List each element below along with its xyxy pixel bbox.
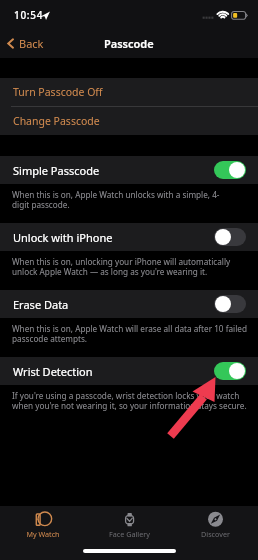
staticText: Unlock with iPhone: [13, 230, 214, 245]
button[interactable]: Unlock with iPhone: [0, 223, 258, 251]
button[interactable]: Simple Passcode: [0, 156, 258, 184]
button[interactable]: Change Passcode: [0, 107, 258, 135]
staticText: Change Passcode: [13, 114, 100, 128]
staticText: 10:54: [14, 8, 44, 22]
button[interactable]: Back: [0, 31, 52, 56]
staticText: Discover: [201, 529, 230, 539]
staticText: Simple Passcode: [13, 163, 214, 178]
button[interactable]: Turn Passcode Off: [0, 78, 258, 106]
button[interactable]: Wrist Detection: [0, 357, 258, 385]
staticText: When this is on, Apple Watch will erase …: [12, 323, 247, 345]
staticText: Back: [19, 36, 44, 51]
staticText: When this is on, unlocking your iPhone w…: [12, 256, 247, 278]
staticText: If you're using a passcode, wrist detect…: [12, 390, 247, 412]
button[interactable]: On: [214, 161, 246, 179]
staticText: When this is on, Apple Watch unlocks wit…: [12, 189, 233, 211]
staticText: Turn Passcode Off: [13, 85, 103, 99]
button[interactable]: Discover: [172, 506, 258, 539]
button[interactable]: Face Gallery: [86, 506, 172, 539]
button[interactable]: My Watch: [0, 506, 86, 539]
staticText: My Watch: [26, 529, 60, 539]
button[interactable]: Erase Data: [0, 290, 258, 318]
staticText: Erase Data: [13, 297, 214, 312]
staticText: Passcode: [104, 36, 154, 51]
button[interactable]: Off: [214, 228, 246, 246]
button[interactable]: On: [214, 362, 246, 380]
staticText: Face Gallery: [109, 529, 150, 539]
staticText: Wrist Detection: [13, 364, 214, 379]
button[interactable]: Off: [214, 295, 246, 313]
